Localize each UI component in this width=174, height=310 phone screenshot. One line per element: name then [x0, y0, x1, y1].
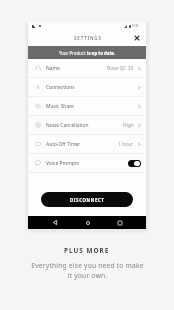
button[interactable]: Noise Cancellation	[28, 116, 146, 134]
staticText: Voice Prompts	[46, 160, 79, 167]
button[interactable]: Close settings	[130, 31, 144, 45]
staticText: Name	[46, 65, 60, 72]
button[interactable]: Back	[48, 216, 61, 229]
staticText: Noise Cancellation	[46, 122, 89, 129]
staticText: Connections	[46, 84, 75, 91]
staticText: Music Share	[46, 103, 74, 110]
staticText: is up to date.	[87, 50, 116, 56]
button[interactable]: Recent apps	[113, 216, 126, 229]
button[interactable]: Connections	[28, 78, 146, 96]
staticText: DISCONNECT	[70, 197, 105, 203]
staticText: SETTINGS	[74, 35, 102, 41]
staticText: Your Product	[59, 50, 87, 56]
staticText: High	[123, 122, 134, 129]
button[interactable]: Voice Prompts	[28, 154, 146, 172]
staticText: PLUS MORE	[64, 246, 110, 255]
staticText: 1 hour	[118, 141, 134, 148]
button[interactable]: Music Share	[28, 97, 146, 115]
staticText: 10:41	[132, 24, 139, 28]
staticText: Everything else you need to make it your…	[31, 261, 144, 280]
button[interactable]: DISCONNECT	[41, 192, 133, 207]
staticText: Auto-Off Timer	[46, 141, 81, 148]
button[interactable]: Home	[81, 216, 94, 229]
staticText: Bose QC 35	[107, 65, 134, 72]
button[interactable]: Auto-Off Timer	[28, 135, 146, 153]
button[interactable]: Name	[28, 59, 146, 77]
